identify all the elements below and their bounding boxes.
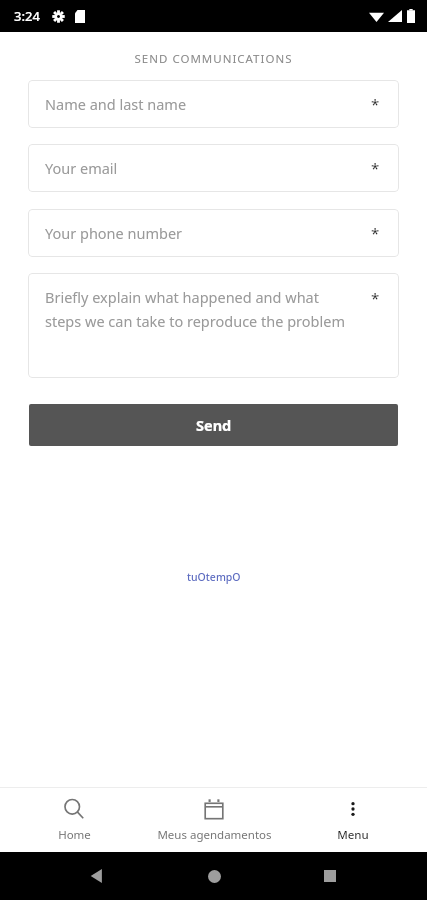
staticText: Name and last name (45, 94, 187, 114)
staticText: Briefly explain what happened and what s… (45, 287, 351, 331)
staticText: * (371, 288, 380, 308)
button[interactable]: Briefly explain what happened and what s… (28, 273, 399, 378)
button[interactable]: Your email (28, 144, 399, 192)
staticText: Send (196, 415, 232, 435)
button[interactable]: Home (194, 856, 234, 896)
staticText: 3:24 (14, 7, 40, 25)
other: Home (63, 798, 85, 820)
button[interactable]: Name and last name (28, 80, 399, 128)
staticText: SEND COMMUNICATIONS (0, 51, 427, 67)
staticText: Your email (45, 158, 118, 178)
button[interactable]: Send (29, 404, 398, 446)
staticText: * (371, 223, 380, 243)
button[interactable]: Home (9, 792, 139, 849)
button[interactable]: Your phone number (28, 209, 399, 257)
button[interactable]: tuOtempO (187, 570, 241, 584)
staticText: Home (58, 827, 91, 843)
other: Meus agendamentos (203, 798, 225, 820)
button[interactable]: Recent apps (310, 856, 350, 896)
staticText: tuOtempO (187, 570, 241, 584)
button[interactable]: Menu (288, 792, 418, 849)
staticText: * (371, 158, 380, 178)
staticText: Menu (337, 827, 369, 843)
staticText: * (371, 94, 380, 114)
button[interactable]: Back (77, 856, 117, 896)
staticText: Your phone number (45, 223, 183, 243)
other: Menu (342, 798, 364, 820)
button[interactable]: Meus agendamentos (149, 792, 279, 849)
staticText: Meus agendamentos (157, 827, 272, 843)
